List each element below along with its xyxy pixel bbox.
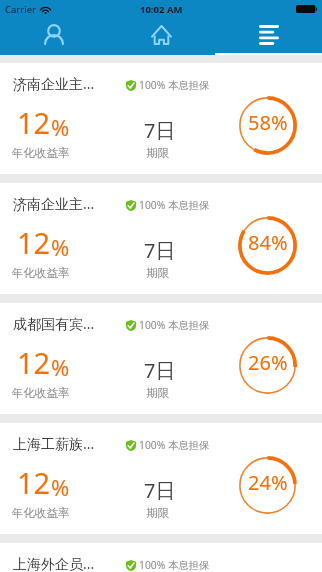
button[interactable]: 上海工薪族...	[0, 423, 322, 534]
staticText: 年化收益率	[12, 146, 70, 160]
staticText: 成都国有宾...	[13, 314, 95, 333]
staticText: 期限	[146, 506, 169, 520]
button[interactable]: 成都国有宾...	[0, 303, 322, 414]
staticText: 24%	[248, 469, 288, 496]
staticText: 7日	[144, 357, 176, 384]
staticText: 济南企业主...	[13, 74, 95, 93]
staticText: 7日	[144, 237, 176, 264]
staticText: 7日	[144, 117, 176, 144]
staticText: 济南企业主...	[13, 194, 95, 213]
staticText: 上海工薪族...	[13, 434, 95, 453]
button[interactable]: 上海外企员...	[0, 543, 322, 572]
staticText: 12	[17, 463, 51, 502]
staticText: %	[51, 112, 70, 142]
staticText: 年化收益率	[12, 506, 70, 520]
staticText: 100% 本息担保	[139, 78, 210, 92]
staticText: %	[51, 232, 70, 262]
staticText: 100% 本息担保	[139, 438, 210, 452]
button[interactable]: Profile	[0, 20, 108, 55]
button[interactable]: 济南企业主...	[0, 63, 322, 174]
button[interactable]: 济南企业主...	[0, 183, 322, 294]
staticText: %	[51, 352, 70, 382]
staticText: 84%	[248, 229, 288, 256]
staticText: 10:02 AM	[140, 3, 183, 16]
staticText: 7日	[144, 477, 176, 504]
staticText: Carrier	[5, 3, 36, 16]
staticText: 100% 本息担保	[139, 558, 210, 572]
staticText: 12	[17, 343, 51, 382]
staticText: 上海外企员...	[13, 554, 95, 572]
staticText: 12	[17, 103, 51, 142]
staticText: %	[51, 472, 70, 502]
staticText: 期限	[146, 266, 169, 280]
staticText: 100% 本息担保	[139, 318, 210, 332]
staticText: 26%	[248, 349, 288, 376]
staticText: 年化收益率	[12, 386, 70, 400]
staticText: 58%	[248, 109, 288, 136]
staticText: 100% 本息担保	[139, 198, 210, 212]
staticText: 年化收益率	[12, 266, 70, 280]
staticText: 12	[17, 223, 51, 262]
staticText: 期限	[146, 386, 169, 400]
button[interactable]: Home	[108, 20, 215, 55]
button[interactable]: Products list	[215, 20, 322, 55]
staticText: 期限	[146, 146, 169, 160]
